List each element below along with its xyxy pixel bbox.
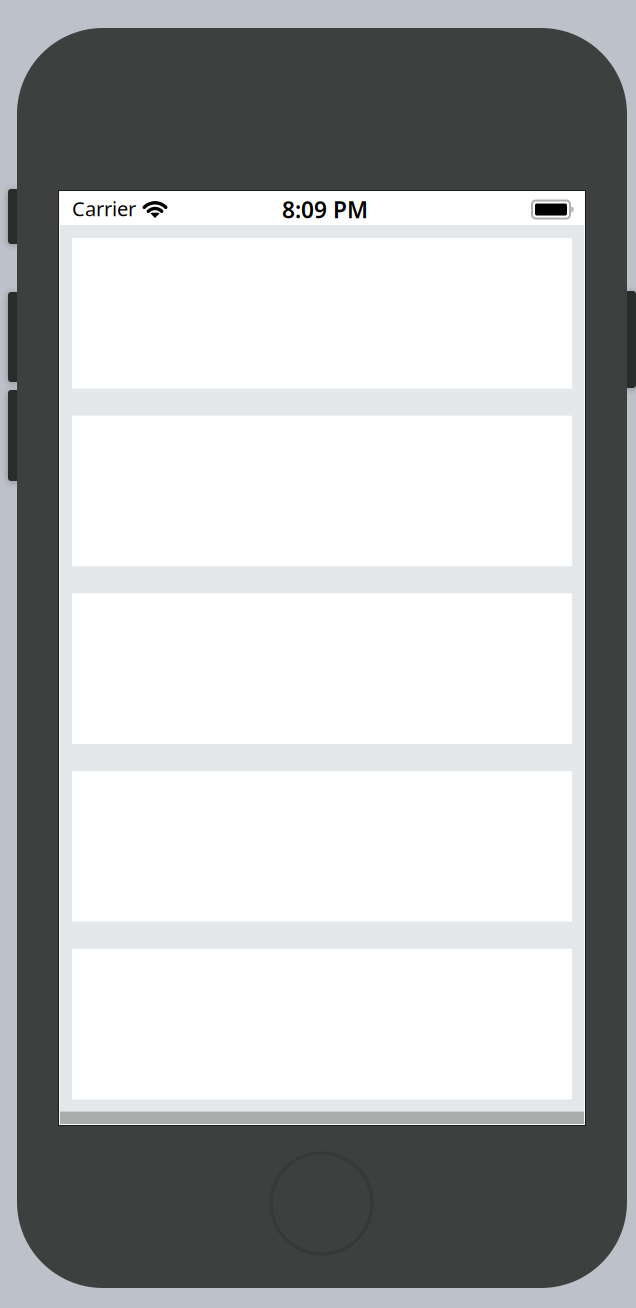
staticText: 8:09 PM [282, 194, 368, 224]
staticText: Carrier [72, 195, 136, 222]
